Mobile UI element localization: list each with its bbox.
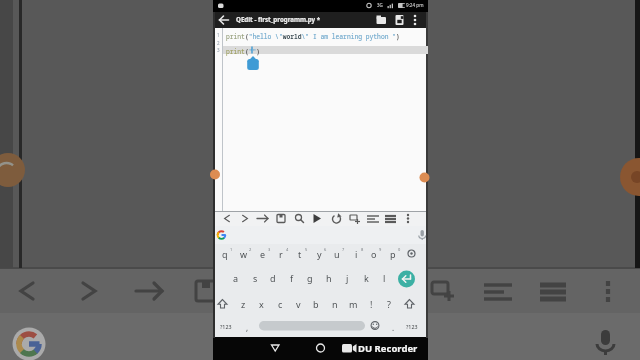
button[interactable]: s	[225, 270, 285, 286]
staticText: v	[296, 298, 301, 310]
staticText: k	[364, 272, 369, 284]
staticText: n	[332, 298, 338, 310]
button[interactable]: j	[317, 270, 377, 286]
button[interactable]: t	[270, 246, 330, 262]
button[interactable]: ?123	[196, 318, 256, 334]
button[interactable]: o	[344, 246, 404, 262]
staticText: u	[334, 248, 340, 260]
staticText: y	[317, 248, 322, 260]
button[interactable]: e	[233, 246, 293, 262]
staticText: 7	[342, 247, 345, 252]
staticText: w	[240, 248, 248, 260]
staticText: l	[383, 272, 386, 284]
button[interactable]: ?	[359, 296, 419, 312]
staticText: ?123	[220, 323, 232, 330]
staticText: !	[370, 298, 373, 310]
staticText: j	[346, 272, 349, 284]
button[interactable]: m	[323, 296, 383, 312]
button[interactable]: v	[268, 296, 328, 312]
staticText: z	[241, 298, 246, 310]
staticText: 8	[361, 247, 364, 252]
button[interactable]: h	[299, 270, 359, 286]
staticText: 3G	[377, 2, 383, 8]
button[interactable]: x	[231, 296, 291, 312]
button[interactable]: y	[289, 246, 349, 262]
button[interactable]: p	[363, 246, 423, 262]
button[interactable]: z	[213, 296, 273, 312]
staticText: ?123	[406, 323, 418, 330]
staticText: 9:24 pm	[406, 2, 424, 8]
staticText: d	[270, 272, 276, 284]
button[interactable]: !	[341, 296, 401, 312]
staticText: p	[390, 248, 396, 260]
button[interactable]	[263, 340, 287, 358]
staticText: c	[278, 298, 283, 310]
staticText: t	[298, 248, 302, 260]
button[interactable]	[308, 340, 332, 358]
staticText: 5	[305, 247, 308, 252]
button[interactable]: q	[195, 246, 255, 262]
button[interactable]: QEdit - first_programm.py *	[236, 15, 366, 23]
staticText: h	[326, 272, 332, 284]
staticText: m	[349, 298, 358, 310]
button[interactable]: c	[250, 296, 310, 312]
staticText: ?	[387, 298, 391, 310]
staticText: print("hello \"world\" I am learning pyt…	[226, 32, 400, 41]
staticText: ,	[246, 322, 249, 333]
staticText: 0	[398, 247, 401, 252]
staticText: a	[233, 272, 239, 284]
staticText: i	[355, 248, 358, 260]
button[interactable]: ,	[217, 319, 277, 335]
staticText: x	[259, 298, 264, 310]
staticText: 2	[217, 40, 220, 46]
staticText: o	[371, 248, 377, 260]
button[interactable]: a	[206, 270, 266, 286]
staticText: b	[313, 298, 319, 310]
staticText: r	[279, 248, 283, 260]
staticText: s	[253, 272, 258, 284]
button[interactable]: .	[363, 319, 423, 335]
button[interactable]: u	[307, 246, 367, 262]
button[interactable]: f	[262, 270, 322, 286]
button[interactable]: b	[286, 296, 346, 312]
staticText: e	[260, 248, 266, 260]
button[interactable]: i	[326, 246, 386, 262]
staticText: 3	[268, 247, 271, 252]
button[interactable]	[213, 211, 428, 226]
staticText: .	[392, 322, 395, 333]
button[interactable]: w	[214, 246, 274, 262]
button[interactable]: r	[251, 246, 311, 262]
staticText: 9	[379, 247, 382, 252]
staticText: 4	[286, 247, 289, 252]
button[interactable]: g	[280, 270, 340, 286]
staticText: 6	[324, 247, 327, 252]
button[interactable]: n	[305, 296, 365, 312]
button[interactable]: DU Recorder	[358, 341, 428, 356]
staticText: QEdit - first_programm.py *	[236, 15, 321, 23]
staticText: g	[307, 272, 313, 284]
staticText: DU Recorder	[358, 342, 418, 355]
staticText: q	[222, 248, 228, 260]
staticText: 2	[249, 247, 252, 252]
staticText: 1	[230, 247, 233, 252]
staticText: 3	[217, 47, 220, 53]
staticText: f	[290, 272, 294, 284]
button[interactable]: ?123	[382, 318, 442, 334]
button[interactable]: k	[336, 270, 396, 286]
button[interactable]: d	[243, 270, 303, 286]
button[interactable]	[213, 226, 428, 244]
button[interactable]: l	[354, 270, 414, 286]
staticText: print("")	[226, 47, 261, 56]
staticText: 1	[217, 32, 220, 38]
